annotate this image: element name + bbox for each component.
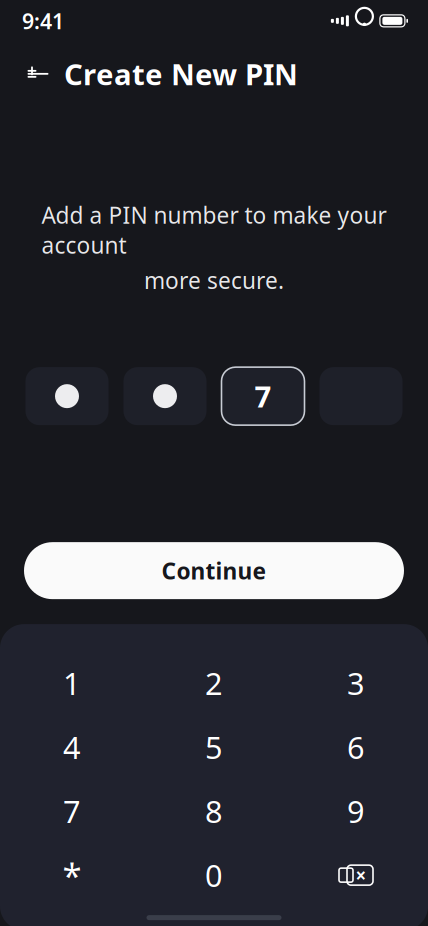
staticText: 1 (63, 663, 81, 703)
staticText: 9:41 (22, 7, 64, 35)
staticText: 0 (205, 855, 223, 895)
staticText: 5 (205, 727, 223, 767)
button[interactable]: 4 (1, 715, 143, 779)
staticText: 6 (347, 727, 365, 767)
button[interactable]: Back (16, 52, 60, 96)
staticText: 2 (205, 663, 223, 703)
staticText: more secure. (144, 265, 284, 295)
staticText: 7 (63, 791, 81, 831)
staticText: 7 (254, 377, 271, 416)
button[interactable]: 9 (285, 779, 427, 843)
staticText: 3 (347, 663, 365, 703)
staticText: Create New PIN (64, 54, 298, 93)
button[interactable]: 1 (1, 651, 143, 715)
staticText: 9 (347, 791, 365, 831)
staticText: 8 (205, 791, 223, 831)
staticText: × (355, 863, 366, 888)
button[interactable]: Continue (24, 542, 404, 599)
button[interactable]: 2 (143, 651, 285, 715)
button[interactable]: 8 (143, 779, 285, 843)
staticText: * (62, 852, 81, 898)
button[interactable]: 6 (285, 715, 427, 779)
staticText: Continue (161, 556, 266, 586)
staticText: Add a PIN number to make your account (41, 200, 386, 260)
button[interactable]: 7 (1, 779, 143, 843)
button[interactable]: 0 (143, 843, 285, 907)
button[interactable]: Delete (285, 843, 427, 907)
button[interactable]: 3 (285, 651, 427, 715)
staticText: 4 (63, 727, 81, 767)
button[interactable]: 5 (143, 715, 285, 779)
button[interactable]: * (1, 843, 143, 907)
